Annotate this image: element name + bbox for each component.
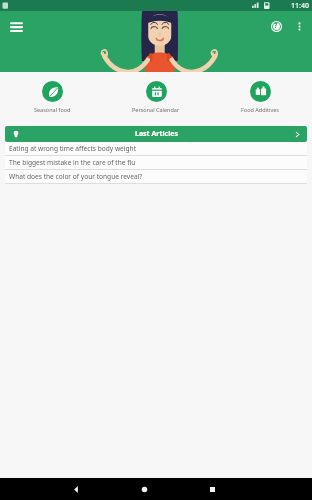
staticText: The biggest mistake in the care of the f… bbox=[9, 158, 136, 167]
button[interactable]: Home bbox=[134, 479, 154, 499]
button[interactable]: Recent apps bbox=[202, 479, 222, 499]
staticText: What does the color of your tongue revea… bbox=[9, 172, 143, 181]
button[interactable]: Help bbox=[264, 14, 288, 38]
staticText: 11:40 bbox=[291, 1, 309, 11]
button[interactable]: More options bbox=[288, 15, 310, 37]
staticText: Seasonal food bbox=[34, 106, 71, 113]
staticText: Last Articles bbox=[135, 129, 178, 139]
staticText: ? bbox=[274, 21, 278, 31]
button[interactable]: Last Articles bbox=[5, 126, 307, 142]
button[interactable]: Open navigation menu bbox=[4, 14, 28, 38]
staticText: Eating at wrong time affects body weight bbox=[9, 144, 137, 153]
button[interactable]: Food Additives bbox=[208, 79, 312, 115]
button[interactable]: Back bbox=[66, 479, 86, 499]
button[interactable]: Eating at wrong time affects body weight bbox=[5, 142, 307, 155]
button[interactable]: The biggest mistake in the care of the f… bbox=[5, 156, 307, 169]
staticText: Food Additives bbox=[241, 106, 279, 113]
button[interactable]: What does the color of your tongue revea… bbox=[5, 170, 307, 183]
button[interactable]: Seasonal food bbox=[0, 79, 104, 115]
button[interactable]: Personal Calendar bbox=[104, 79, 208, 115]
staticText: Personal Calendar bbox=[132, 106, 180, 113]
